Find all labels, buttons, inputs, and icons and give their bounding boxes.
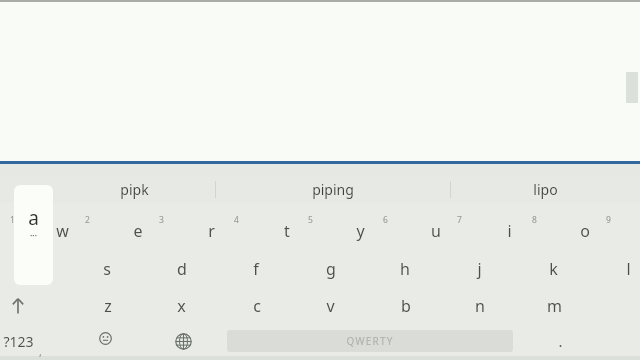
button[interactable]: Shift [0,287,48,325]
button[interactable]: m [517,287,592,325]
button[interactable]: ?123 [0,324,56,358]
button[interactable]: c [219,287,294,325]
button[interactable]: u [398,211,473,251]
button[interactable]: Emoji [75,324,135,358]
staticText: u [431,220,441,242]
button[interactable]: i [472,211,547,251]
staticText: x [177,295,186,317]
staticText: ••• [30,232,37,240]
staticText: f [253,258,259,280]
staticText: 3 [159,214,164,226]
button[interactable]: f [218,250,293,288]
button[interactable]: b [368,287,443,325]
staticText: s [103,258,111,280]
button[interactable]: s [69,250,144,288]
staticText: y [356,220,365,242]
button[interactable]: o [547,211,622,251]
staticText: l [626,258,631,280]
staticText: m [547,295,562,317]
staticText: a [28,205,39,231]
button[interactable]: r [174,211,249,251]
button[interactable]: w [25,211,100,251]
button[interactable]: q [0,211,26,251]
staticText: k [549,258,558,280]
staticText: pipk [120,180,149,199]
staticText: , [39,344,42,359]
button[interactable]: g [293,250,368,288]
button[interactable]: pipk [53,175,215,203]
button[interactable]: n [442,287,517,325]
staticText: o [580,220,590,242]
staticText: c [253,295,261,317]
button[interactable]: k [516,250,591,288]
staticText: w [56,220,69,242]
staticText: 2 [85,214,90,226]
button[interactable]: a [0,250,70,288]
staticText: piping [312,180,354,199]
staticText: i [507,220,512,242]
staticText: g [326,258,336,280]
button[interactable]: h [367,250,442,288]
button[interactable]: QWERTY [227,330,513,352]
button[interactable]: v [293,287,368,325]
staticText: d [177,258,187,280]
button[interactable]: y [323,211,398,251]
staticText: lipo [533,180,558,199]
staticText: QWERTY [346,334,394,348]
staticText: h [400,258,410,280]
staticText: e [133,220,143,242]
staticText: 6 [383,214,388,226]
staticText: 9 [606,214,611,226]
staticText: ?123 [3,332,34,351]
button[interactable]: . [530,324,590,358]
button[interactable]: lipo [451,175,640,203]
button[interactable]: t [249,211,324,251]
button[interactable]: l [591,250,640,288]
staticText: v [326,295,335,317]
staticText: n [475,295,485,317]
button[interactable]: piping [216,175,450,203]
staticText: 5 [308,214,313,226]
button[interactable]: d [144,250,219,288]
staticText: 7 [457,214,462,226]
staticText: 1 [10,214,15,226]
staticText: r [208,220,215,242]
button[interactable]: z [70,287,145,325]
button[interactable]: j [442,250,517,288]
button[interactable]: e [100,211,175,251]
staticText: . [558,331,563,351]
staticText: b [401,295,411,317]
staticText: 8 [532,214,537,226]
staticText: 4 [234,214,239,226]
button[interactable]: Change keyboard language [153,324,213,358]
staticText: z [104,295,112,317]
staticText: j [477,258,482,280]
button[interactable]: x [144,287,219,325]
staticText: t [284,220,290,242]
